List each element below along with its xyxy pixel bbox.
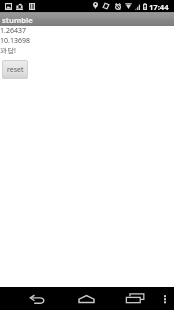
staticText: 꽈당! bbox=[0, 46, 16, 56]
button[interactable]: More options bbox=[157, 287, 173, 310]
button[interactable]: Home bbox=[71, 287, 102, 310]
staticText: 17:44 bbox=[149, 2, 169, 12]
button[interactable]: Back bbox=[22, 287, 53, 310]
staticText: 1.26437 bbox=[0, 26, 26, 36]
staticText: reset bbox=[7, 65, 24, 75]
button[interactable]: reset bbox=[2, 60, 28, 79]
button[interactable]: Recent apps bbox=[119, 287, 150, 310]
staticText: stumble bbox=[2, 15, 33, 25]
staticText: 10.13698 bbox=[0, 36, 30, 46]
